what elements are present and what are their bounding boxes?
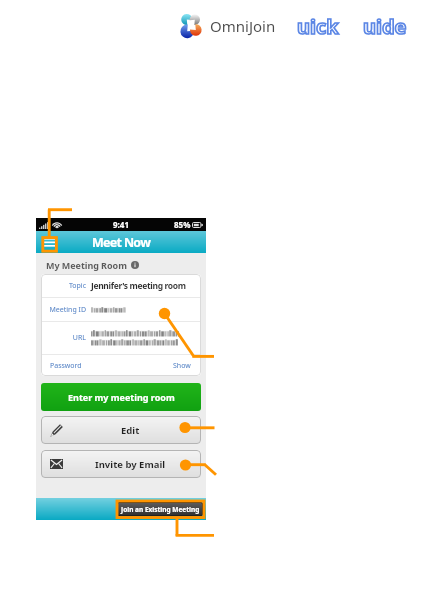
staticText: Topic — [68, 281, 86, 291]
button[interactable]: Edit — [41, 416, 201, 444]
button[interactable]: Join an Existing Meeting — [117, 502, 203, 516]
staticText: 85% — [174, 219, 191, 230]
button[interactable]: Open navigation menu — [41, 234, 57, 250]
staticText: OmniJoin — [210, 16, 276, 36]
staticText: My Meeting Room — [46, 259, 127, 271]
staticText: Edit — [121, 424, 140, 437]
staticText: Meet Now — [92, 234, 151, 251]
staticText: Show — [173, 361, 191, 371]
staticText: 9:41 — [113, 219, 129, 230]
staticText: Meeting ID — [49, 305, 86, 315]
staticText: Invite by Email — [95, 458, 166, 471]
button[interactable]: Enter my meeting room — [41, 383, 201, 411]
button[interactable]: Show — [173, 361, 191, 371]
staticText: uide — [363, 13, 407, 40]
staticText: Enter my meeting room — [68, 391, 175, 403]
staticText: Join an Existing Meeting — [121, 505, 200, 514]
staticText: URL — [72, 333, 86, 343]
staticText: uick — [297, 13, 339, 40]
staticText: Password — [50, 361, 82, 371]
button[interactable]: Invite by Email — [41, 450, 201, 478]
staticText: Jennifer's meeting room — [91, 280, 186, 292]
